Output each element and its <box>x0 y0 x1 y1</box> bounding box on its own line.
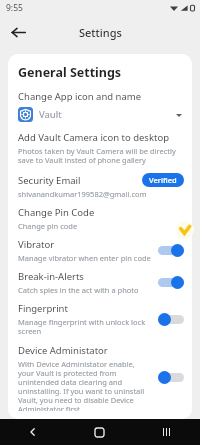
button[interactable]: Vibrator <box>18 238 184 263</box>
staticText: Verified <box>149 175 177 185</box>
staticText: Break-in-Alerts <box>18 270 84 283</box>
button[interactable]: Change Pin Code <box>18 206 184 231</box>
button[interactable]: On <box>158 276 184 289</box>
button[interactable]: On <box>158 244 184 257</box>
staticText: Catch spies in the act with a photo <box>18 285 139 295</box>
button[interactable]: Off <box>158 313 184 326</box>
button[interactable]: Security Email <box>18 173 184 199</box>
staticText: With Device Administator enable, your Va… <box>18 359 152 411</box>
button[interactable]: Add Vault Camera icon to desktop <box>18 131 184 166</box>
staticText: Settings <box>79 25 122 40</box>
button[interactable]: Change App icon and name <box>18 90 184 122</box>
staticText: Security Email <box>18 174 81 187</box>
button[interactable]: Fingerprint <box>18 302 184 337</box>
staticText: Vibrator <box>18 238 55 251</box>
staticText: General Settings <box>18 64 122 81</box>
staticText: Vault <box>39 108 62 121</box>
button[interactable]: Back <box>4 18 32 46</box>
staticText: Add Vault Camera icon to desktop <box>18 131 169 144</box>
staticText: Change Pin Code <box>18 206 95 219</box>
staticText: Change pin code <box>18 221 78 231</box>
staticText: Device Administator <box>18 344 108 357</box>
button[interactable]: Recent apps <box>133 419 200 445</box>
staticText: Manage vibrator when enter pin code <box>18 253 151 263</box>
staticText: 9:55 <box>6 2 23 14</box>
staticText: Change App icon and name <box>18 90 142 103</box>
staticText: Manage fingerprint with unlock lock scre… <box>18 317 152 337</box>
button[interactable]: Back <box>0 419 66 445</box>
staticText: Photos taken by Vault Camera will be dir… <box>18 146 184 166</box>
staticText: shivanandkumar199582@gmail.com <box>18 189 147 199</box>
staticText: Fingerprint <box>18 302 68 315</box>
button[interactable]: Device Administator <box>18 344 184 411</box>
button[interactable]: Home <box>66 419 133 445</box>
button[interactable]: Off <box>158 371 184 384</box>
button[interactable]: Break-in-Alerts <box>18 270 184 295</box>
